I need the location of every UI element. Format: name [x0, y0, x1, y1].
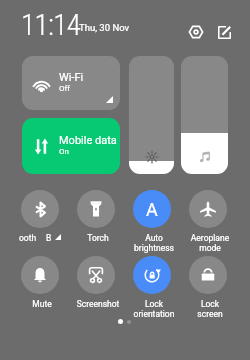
button[interactable]: Lock orientation: [124, 256, 180, 319]
staticText: Auto brightness: [126, 233, 182, 253]
button[interactable]: Settings: [184, 20, 208, 44]
button[interactable]: Auto brightness: [124, 190, 180, 253]
staticText: Torch: [70, 233, 126, 243]
button[interactable]: Torch: [68, 190, 124, 243]
staticText: Mobile data: [59, 134, 117, 147]
staticText: Screenshot: [70, 299, 126, 309]
button[interactable]: Media volume: [181, 56, 228, 174]
button[interactable]: Mobile data: [22, 118, 120, 174]
staticText: Wi-Fi: [59, 71, 84, 84]
staticText: B: [46, 233, 52, 243]
staticText: Mute: [14, 299, 70, 309]
staticText: 11:14: [21, 8, 81, 42]
staticText: A: [146, 199, 158, 220]
button[interactable]: Bluetooth: [12, 190, 68, 228]
button[interactable]: Screenshot: [68, 256, 124, 309]
button[interactable]: Brightness: [129, 56, 174, 174]
staticText: Thu, 30 Nov: [79, 22, 130, 33]
button[interactable]: Edit tiles: [212, 20, 236, 44]
button[interactable]: Lock screen: [180, 256, 236, 319]
button[interactable]: Mute: [12, 256, 68, 309]
staticText: ooth: [19, 233, 37, 243]
staticText: Lock orientation: [126, 299, 182, 319]
staticText: Lock screen: [182, 299, 238, 319]
button[interactable]: Wi-Fi: [22, 56, 120, 110]
staticText: Aeroplane mode: [182, 233, 238, 253]
staticText: Off: [59, 84, 71, 93]
staticText: On: [59, 147, 69, 156]
button[interactable]: Aeroplane mode: [180, 190, 236, 253]
